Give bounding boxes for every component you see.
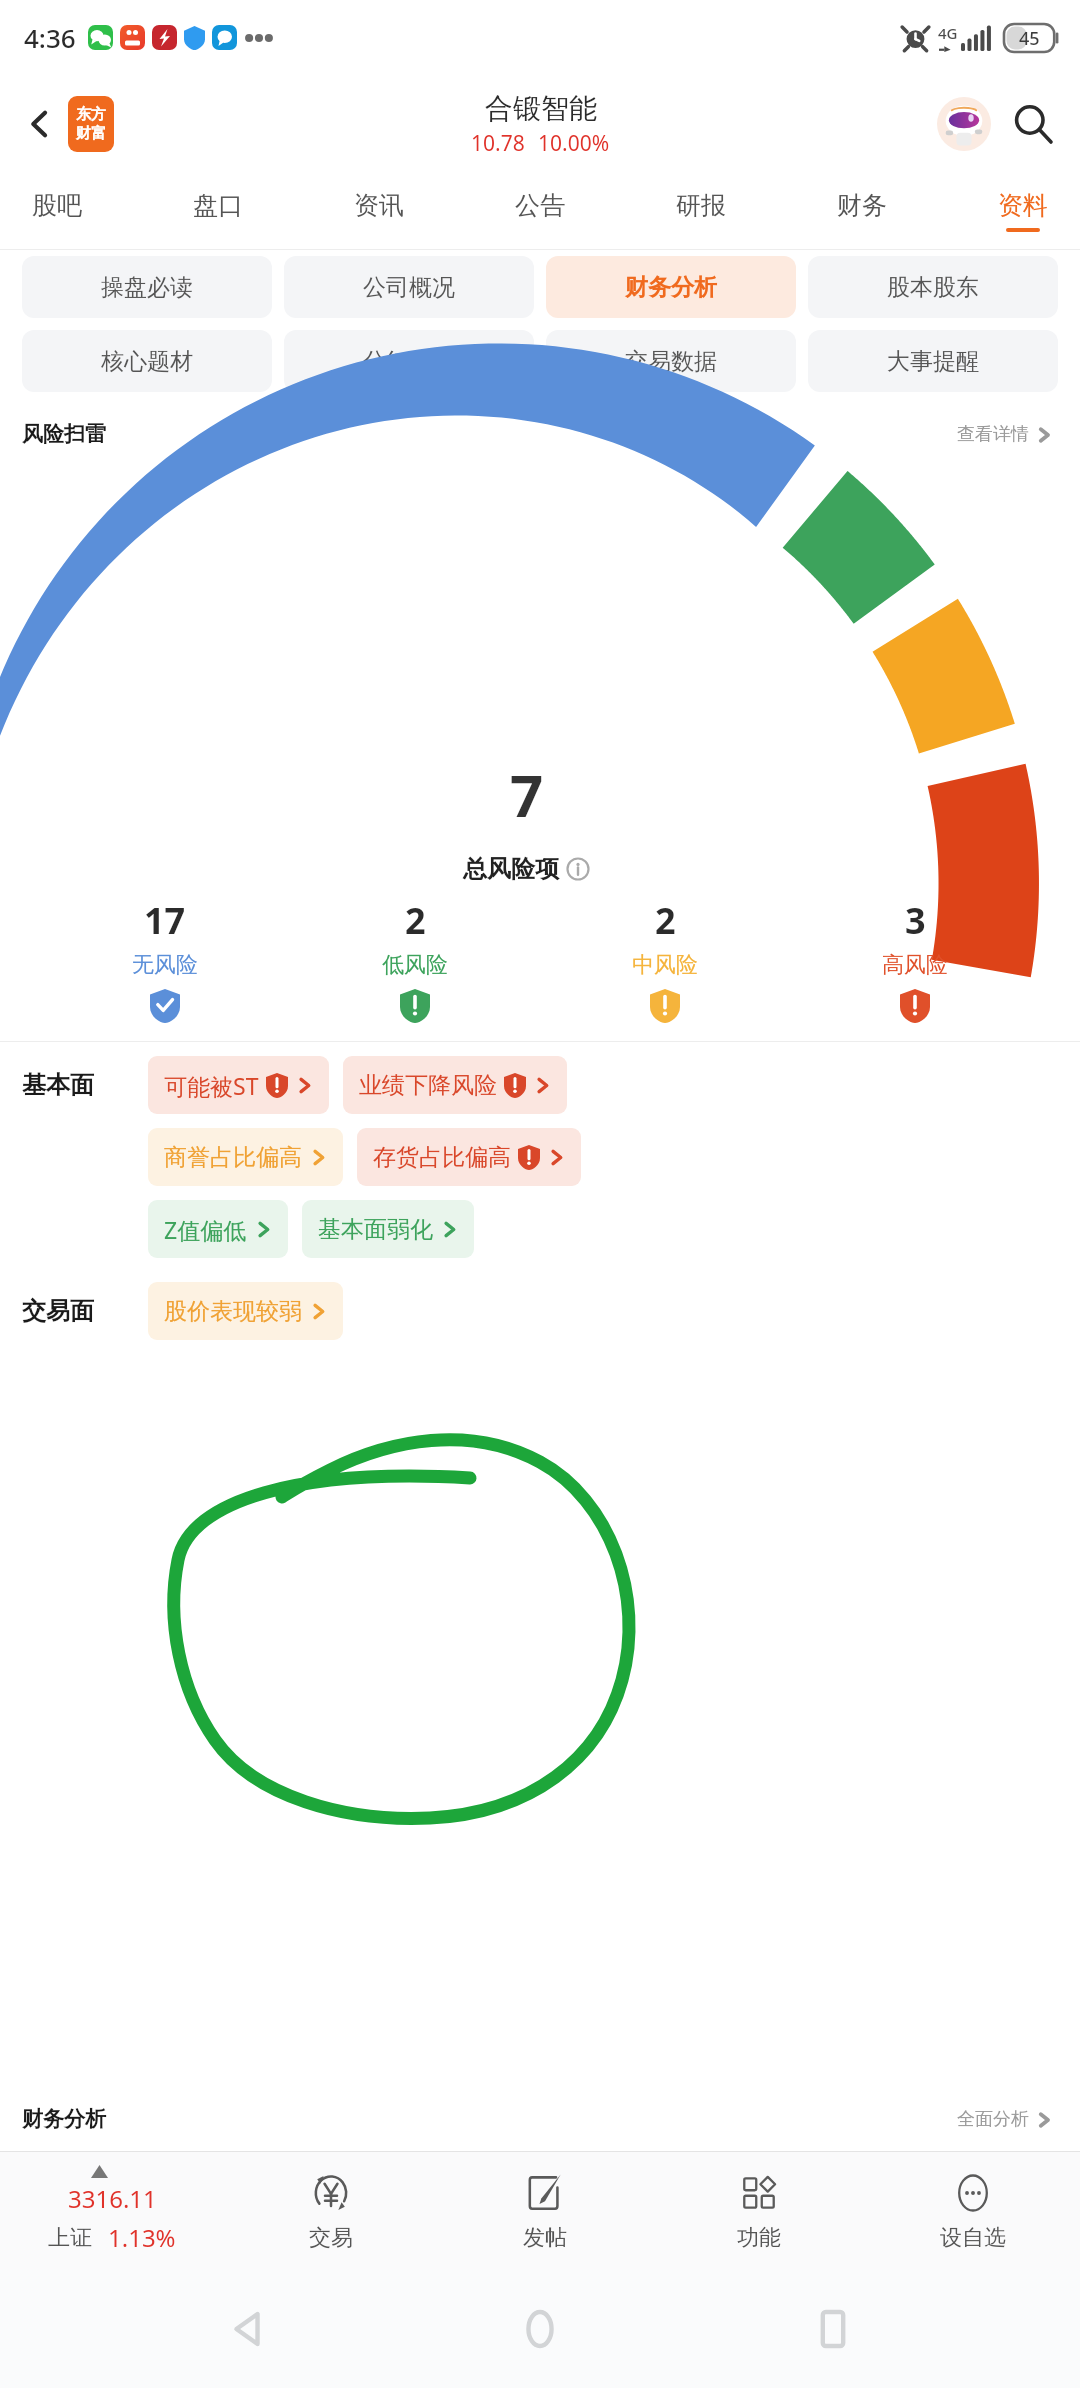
staticText: 股吧 — [32, 190, 82, 221]
staticText: 交易面 — [22, 1296, 132, 1326]
staticText: 低风险 — [382, 951, 448, 979]
staticText: 商誉占比偏高 — [164, 1143, 302, 1172]
staticText: 4:36 — [24, 20, 76, 55]
staticText: 公告 — [515, 190, 565, 221]
staticText: 3 — [905, 896, 926, 945]
button[interactable]: 研报 — [668, 184, 734, 238]
button[interactable]: 财务分析 — [546, 256, 796, 318]
button[interactable]: 查看详情 — [951, 417, 1058, 452]
staticText: 财务分析 — [625, 273, 717, 302]
staticText: 2 — [405, 896, 426, 945]
staticText: 总风险项 — [463, 854, 559, 884]
button[interactable]: 返回 — [203, 2284, 293, 2374]
button[interactable]: 2 — [290, 892, 540, 1027]
button[interactable]: 可能被ST — [148, 1056, 329, 1114]
button[interactable]: 交易 — [224, 2164, 438, 2258]
staticText: 3316.11 — [68, 2182, 157, 2215]
button[interactable]: 核心题材 — [22, 330, 272, 392]
button[interactable]: 发帖 — [438, 2164, 652, 2258]
button[interactable]: 3316.11 — [0, 2165, 224, 2258]
staticText: 基本面弱化 — [318, 1215, 433, 1244]
staticText: 盘口 — [193, 190, 243, 221]
button[interactable]: 资讯 — [346, 184, 412, 238]
button[interactable]: 交易数据 — [546, 330, 796, 392]
button[interactable]: 基本面弱化 — [302, 1200, 474, 1258]
button[interactable]: 资料 — [990, 184, 1056, 238]
staticText: 财务 — [837, 190, 887, 221]
button[interactable]: 3 — [790, 892, 1040, 1027]
button[interactable]: 操盘必读 — [22, 256, 272, 318]
staticText: 无风险 — [132, 951, 198, 979]
staticText: 核心题材 — [101, 347, 193, 376]
staticText: 7 — [510, 755, 544, 834]
button[interactable]: 商誉占比偏高 — [148, 1128, 343, 1186]
staticText: 45 — [1019, 26, 1040, 51]
staticText: 基本面 — [22, 1070, 132, 1100]
button[interactable]: 盘口 — [185, 184, 251, 238]
button[interactable]: 东方 — [68, 96, 114, 152]
button[interactable]: 股价表现较弱 — [148, 1282, 343, 1340]
staticText: 操盘必读 — [101, 273, 193, 302]
staticText: 发帖 — [523, 2224, 567, 2252]
button[interactable]: 2 — [540, 892, 790, 1027]
staticText: 业绩下降风险 — [359, 1071, 497, 1100]
staticText: 10.78 — [471, 129, 525, 158]
button[interactable]: 全面分析 — [951, 2102, 1058, 2137]
staticText: 中风险 — [632, 951, 698, 979]
staticText: 10.00% — [538, 129, 610, 158]
button[interactable]: 功能 — [652, 2164, 866, 2258]
button[interactable]: 分红融资 — [284, 330, 534, 392]
button[interactable]: 存货占比偏高 — [357, 1128, 581, 1186]
button[interactable]: 公告 — [507, 184, 573, 238]
button[interactable]: 智能助手 — [934, 94, 994, 154]
staticText: 财富 — [76, 124, 106, 143]
staticText: 风险扫雷 — [22, 421, 106, 447]
staticText: 股价表现较弱 — [164, 1297, 302, 1326]
staticText: 功能 — [737, 2224, 781, 2252]
staticText: 股本股东 — [887, 273, 979, 302]
button[interactable]: 最近任务 — [788, 2284, 878, 2374]
button[interactable]: 公司概况 — [284, 256, 534, 318]
staticText: 4G — [938, 23, 958, 43]
staticText: 分红融资 — [363, 347, 455, 376]
button[interactable]: 大事提醒 — [808, 330, 1058, 392]
button[interactable]: 主屏幕 — [495, 2284, 585, 2374]
button[interactable]: 财务 — [829, 184, 895, 238]
staticText: 2 — [655, 896, 676, 945]
staticText: 1.13% — [108, 2221, 176, 2254]
staticText: 研报 — [676, 190, 726, 221]
button[interactable]: 搜索 — [1004, 95, 1062, 153]
button[interactable]: 股吧 — [24, 184, 90, 238]
staticText: 交易 — [309, 2224, 353, 2252]
staticText: 查看详情 — [957, 423, 1029, 446]
staticText: 17 — [144, 896, 186, 945]
staticText: 高风险 — [882, 951, 948, 979]
button[interactable]: 17 — [40, 892, 290, 1027]
staticText: Z值偏低 — [164, 1214, 247, 1245]
staticText: 交易数据 — [625, 347, 717, 376]
staticText: 资讯 — [354, 190, 404, 221]
staticText: 资料 — [998, 190, 1048, 221]
staticText: 大事提醒 — [887, 347, 979, 376]
staticText: 上证 — [48, 2224, 92, 2252]
staticText: 公司概况 — [363, 273, 455, 302]
button[interactable]: Z值偏低 — [148, 1200, 288, 1258]
staticText: 全面分析 — [957, 2108, 1029, 2131]
staticText: 合锻智能 — [485, 91, 597, 126]
button[interactable]: 业绩下降风险 — [343, 1056, 567, 1114]
staticText: 财务分析 — [22, 2106, 106, 2132]
button[interactable]: 股本股东 — [808, 256, 1058, 318]
staticText: 可能被ST — [164, 1070, 259, 1101]
staticText: 东方 — [76, 105, 106, 124]
button[interactable]: 返回 — [14, 98, 66, 150]
staticText: 设自选 — [940, 2224, 1006, 2252]
button[interactable]: 设自选 — [866, 2164, 1080, 2258]
staticText: 存货占比偏高 — [373, 1143, 511, 1172]
